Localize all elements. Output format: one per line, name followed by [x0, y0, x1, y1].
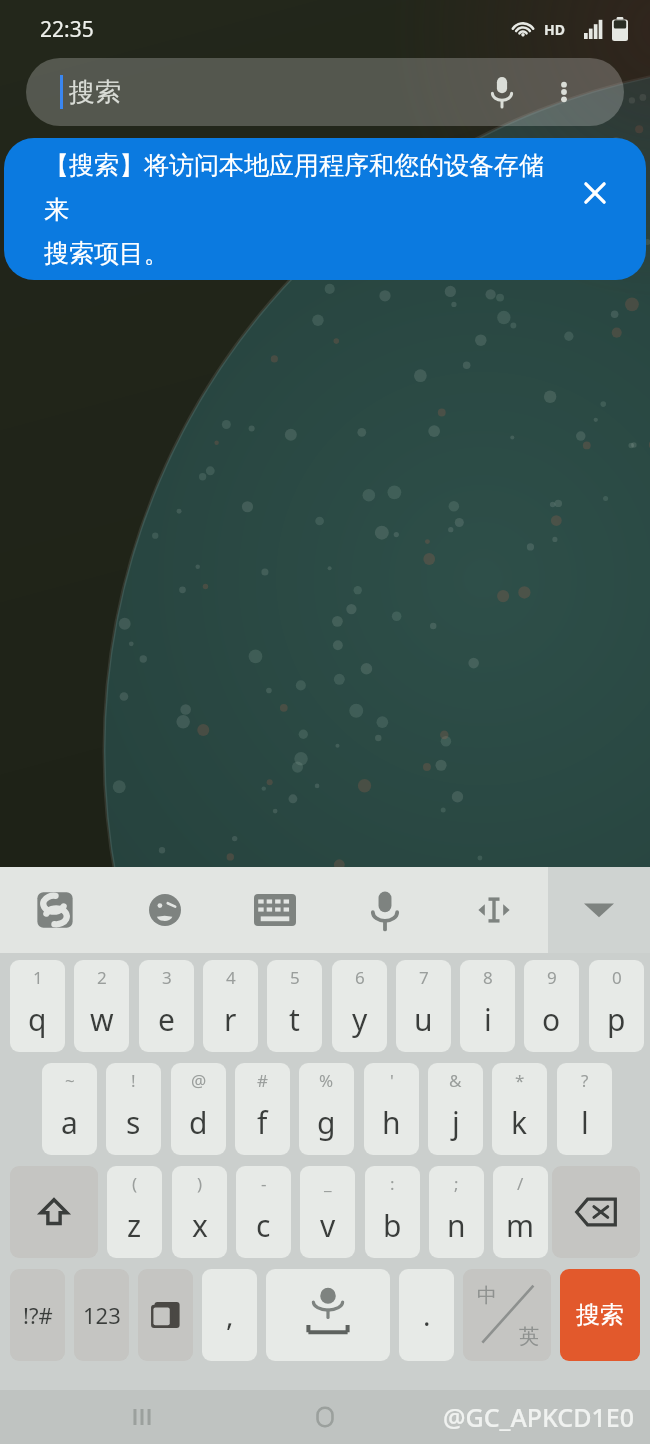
button[interactable]: :: [365, 1166, 420, 1258]
button[interactable]: ?: [557, 1063, 612, 1155]
staticText: 2: [97, 966, 107, 989]
button[interactable]: 2: [74, 960, 129, 1052]
button[interactable]: Hide keyboard: [548, 867, 650, 953]
button[interactable]: 搜索: [560, 1269, 640, 1361]
staticText: ): [197, 1172, 203, 1195]
staticText: ': [390, 1069, 394, 1092]
staticText: !: [131, 1069, 136, 1092]
button[interactable]: Space: [266, 1269, 390, 1361]
staticText: l: [581, 1102, 589, 1143]
button[interactable]: ~: [42, 1063, 97, 1155]
button[interactable]: 3: [139, 960, 194, 1052]
staticText: h: [382, 1102, 401, 1143]
button[interactable]: 7: [396, 960, 451, 1052]
staticText: z: [127, 1205, 142, 1246]
staticText: ?: [581, 1069, 589, 1092]
staticText: 22:35: [40, 15, 94, 44]
button[interactable]: Keyboard layout: [220, 867, 330, 953]
button[interactable]: Emoji: [110, 867, 220, 953]
button[interactable]: !: [106, 1063, 161, 1155]
staticText: p: [607, 999, 626, 1040]
staticText: _: [324, 1172, 332, 1195]
staticText: !?#: [23, 1300, 53, 1330]
button[interactable]: Switch language: [138, 1269, 193, 1361]
staticText: -: [261, 1172, 267, 1195]
staticText: @GC_APKCD1E0: [443, 1400, 634, 1434]
button[interactable]: 0: [589, 960, 644, 1052]
staticText: :: [390, 1172, 395, 1195]
staticText: x: [192, 1205, 208, 1246]
staticText: 【搜索】将访问本地应用程序和您的设备存储来 搜索项目。: [44, 150, 550, 269]
button[interactable]: More options: [542, 70, 586, 114]
staticText: /: [517, 1172, 524, 1195]
staticText: c: [256, 1205, 271, 1246]
button[interactable]: 搜索: [26, 58, 624, 126]
button[interactable]: ): [172, 1166, 227, 1258]
button[interactable]: ;: [429, 1166, 484, 1258]
staticText: m: [506, 1205, 535, 1246]
staticText: 英: [519, 1324, 539, 1349]
button[interactable]: _: [300, 1166, 355, 1258]
button[interactable]: Shift: [10, 1166, 98, 1258]
staticText: ,: [226, 1296, 234, 1334]
button[interactable]: Cursor control: [440, 867, 548, 953]
button[interactable]: Recents: [120, 1395, 164, 1439]
staticText: .: [423, 1296, 431, 1334]
staticText: e: [158, 999, 175, 1040]
button[interactable]: Voice search: [480, 70, 524, 114]
button[interactable]: Backspace: [552, 1166, 640, 1258]
button[interactable]: #: [235, 1063, 290, 1155]
staticText: u: [414, 999, 433, 1040]
button[interactable]: Home: [303, 1395, 347, 1439]
button[interactable]: 9: [524, 960, 579, 1052]
staticText: i: [484, 999, 492, 1040]
staticText: HD: [544, 20, 565, 39]
staticText: 1: [33, 966, 43, 989]
button[interactable]: @: [171, 1063, 226, 1155]
staticText: (: [132, 1172, 138, 1195]
staticText: ~: [65, 1069, 75, 1092]
staticText: 中: [477, 1283, 497, 1308]
button[interactable]: %: [299, 1063, 354, 1155]
staticText: a: [61, 1102, 78, 1143]
button[interactable]: ': [364, 1063, 419, 1155]
staticText: 7: [419, 966, 429, 989]
button[interactable]: .: [399, 1269, 454, 1361]
staticText: d: [189, 1102, 208, 1143]
staticText: j: [452, 1102, 460, 1143]
button[interactable]: 5: [267, 960, 322, 1052]
button[interactable]: Chinese English toggle: [463, 1269, 551, 1361]
staticText: 搜索: [576, 1300, 624, 1330]
staticText: 123: [83, 1300, 121, 1330]
button[interactable]: 1: [10, 960, 65, 1052]
button[interactable]: /: [493, 1166, 548, 1258]
button[interactable]: 123: [74, 1269, 129, 1361]
staticText: 8: [483, 966, 493, 989]
button[interactable]: -: [236, 1166, 291, 1258]
staticText: &: [449, 1069, 462, 1092]
button[interactable]: Sogou input settings: [0, 867, 110, 953]
button[interactable]: 6: [332, 960, 387, 1052]
staticText: @: [191, 1069, 207, 1092]
staticText: s: [126, 1102, 141, 1143]
button[interactable]: ,: [202, 1269, 257, 1361]
button[interactable]: Voice input: [330, 867, 440, 953]
staticText: q: [28, 999, 47, 1040]
staticText: 6: [355, 966, 365, 989]
button[interactable]: &: [428, 1063, 483, 1155]
button[interactable]: 【搜索】将访问本地应用程序和您的设备存储来 搜索项目。: [4, 138, 646, 280]
button[interactable]: 4: [203, 960, 258, 1052]
staticText: *: [515, 1069, 525, 1092]
button[interactable]: !?#: [10, 1269, 65, 1361]
button[interactable]: *: [492, 1063, 547, 1155]
staticText: 4: [226, 966, 236, 989]
button[interactable]: (: [107, 1166, 162, 1258]
button[interactable]: Close: [578, 176, 612, 210]
button[interactable]: 8: [460, 960, 515, 1052]
staticText: k: [511, 1102, 528, 1143]
staticText: 搜索: [69, 76, 121, 109]
staticText: 3: [162, 966, 172, 989]
staticText: 9: [547, 966, 557, 989]
staticText: 0: [612, 966, 622, 989]
staticText: w: [90, 999, 114, 1040]
